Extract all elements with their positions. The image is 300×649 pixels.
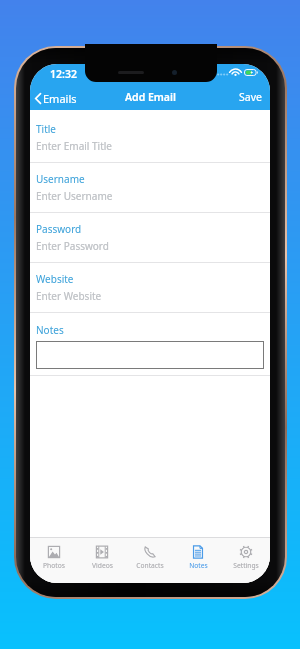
staticText: Title bbox=[36, 122, 56, 136]
staticText: Password bbox=[36, 222, 82, 236]
button[interactable]: Password bbox=[30, 213, 270, 262]
staticText: 12:32 bbox=[50, 67, 77, 81]
staticText: Enter Website bbox=[36, 289, 102, 303]
button[interactable] bbox=[36, 341, 264, 369]
staticText: Enter Password bbox=[36, 239, 109, 253]
staticText: Notes bbox=[189, 561, 208, 570]
staticText: Photos bbox=[43, 561, 65, 570]
staticText: Contacts bbox=[136, 561, 164, 570]
button[interactable]: Photos bbox=[30, 538, 78, 570]
button[interactable]: Videos bbox=[78, 538, 126, 570]
staticText: Emails bbox=[43, 91, 77, 106]
staticText: Settings bbox=[233, 561, 259, 570]
button[interactable]: Username bbox=[30, 163, 270, 212]
staticText: Add Email bbox=[125, 90, 176, 104]
staticText: Website bbox=[36, 272, 74, 286]
staticText: Notes bbox=[36, 323, 64, 337]
button[interactable]: Settings bbox=[222, 538, 270, 570]
staticText: Enter Username bbox=[36, 189, 113, 203]
staticText: Username bbox=[36, 172, 85, 186]
button[interactable]: Title bbox=[30, 113, 270, 162]
staticText: Videos bbox=[92, 561, 113, 570]
button[interactable]: Contacts bbox=[126, 538, 174, 570]
button[interactable]: Website bbox=[30, 263, 270, 312]
button[interactable]: Save bbox=[239, 90, 270, 110]
button[interactable]: Emails bbox=[30, 86, 83, 110]
staticText: Enter Email Title bbox=[36, 139, 112, 153]
button[interactable]: Notes bbox=[174, 538, 222, 570]
